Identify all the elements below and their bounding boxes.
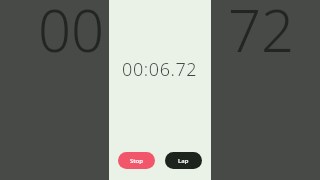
staticText: 72 — [228, 0, 295, 69]
button[interactable]: Lap — [165, 152, 202, 169]
staticText: 00 — [38, 0, 105, 69]
button[interactable]: Stop — [118, 152, 155, 169]
staticText: 00:06.72 — [122, 57, 198, 82]
staticText: Lap — [178, 157, 189, 165]
staticText: Stop — [130, 157, 143, 165]
